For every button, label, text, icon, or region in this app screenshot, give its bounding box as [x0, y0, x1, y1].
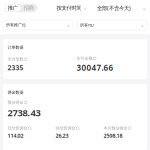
staticText: 全部(不含今天): [97, 4, 131, 12]
button[interactable]: 所有PID: [77, 20, 147, 30]
staticText: 按支付时间: [56, 5, 81, 11]
staticText: 招商: [24, 5, 34, 11]
button[interactable]: 推广: [5, 5, 21, 11]
staticText: 预估佣金: [7, 100, 23, 105]
staticText: ⌄: [66, 22, 70, 28]
staticText: 本月预估佣金: [103, 126, 127, 131]
staticText: 2738.43: [7, 106, 40, 119]
staticText: 待结算佣金: [55, 126, 75, 131]
staticText: 2335: [7, 63, 23, 72]
button[interactable]: 全部(不含今天): [97, 4, 146, 12]
staticText: 所有推广位: [6, 22, 26, 27]
staticText: 订单数据: [7, 45, 23, 50]
button[interactable]: 按支付时间: [56, 5, 87, 11]
staticText: 佣金数据: [7, 90, 23, 95]
staticText: ⌄: [83, 5, 87, 11]
button[interactable]: 所有推广位: [3, 20, 73, 30]
staticText: 支付笔数: [7, 57, 23, 62]
staticText: 114.02: [7, 132, 23, 139]
staticText: 30047.66: [76, 62, 113, 73]
staticText: 支付金额: [76, 56, 92, 61]
staticText: 26.23: [55, 132, 68, 139]
staticText: 已结算佣金: [7, 126, 27, 131]
staticText: ⌄: [142, 5, 146, 11]
staticText: 2598.18: [103, 132, 122, 139]
staticText: 所有PID: [80, 22, 94, 28]
staticText: ⌄: [140, 22, 144, 28]
button[interactable]: 招商: [21, 5, 37, 11]
staticText: 推广: [8, 5, 18, 11]
